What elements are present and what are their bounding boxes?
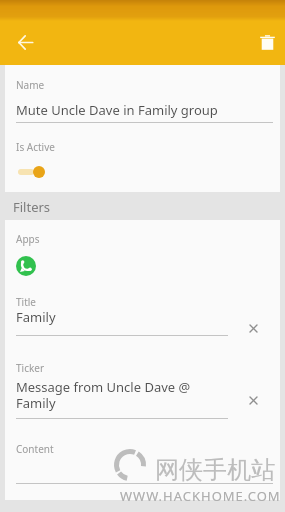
staticText: Message from Uncle Dave @ Family: [16, 378, 228, 411]
button[interactable]: WhatsApp: [16, 256, 36, 276]
button[interactable]: Back: [11, 28, 39, 56]
staticText: Name: [16, 78, 45, 92]
button[interactable]: Clear: [240, 387, 266, 413]
staticText: Ticker: [16, 361, 45, 375]
staticText: Family: [16, 308, 56, 326]
staticText: Content: [16, 442, 54, 456]
staticText: Title: [16, 295, 36, 309]
staticText: Is Active: [16, 140, 55, 154]
staticText: Mute Uncle Dave in Family group: [16, 101, 218, 119]
staticText: 网侠手机站: [155, 455, 275, 485]
button[interactable]: Is Active toggle: [13, 160, 53, 182]
staticText: Filters: [13, 198, 51, 216]
staticText: WWW.HACKHOME.COM: [120, 487, 281, 505]
button[interactable]: Clear: [240, 315, 266, 341]
button[interactable]: Delete: [253, 28, 281, 56]
staticText: Apps: [16, 232, 40, 246]
